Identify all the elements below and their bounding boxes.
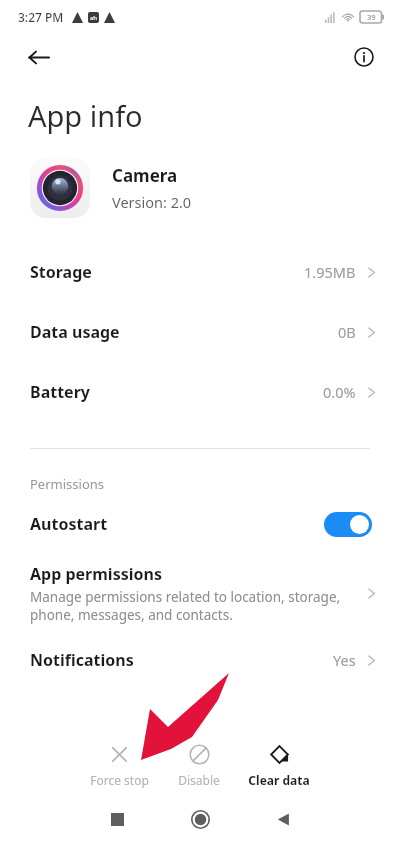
staticText: Storage: [30, 261, 92, 283]
button[interactable]: Clear data: [244, 742, 314, 790]
staticText: Permissions: [30, 475, 105, 493]
button[interactable]: Data usage: [0, 302, 400, 362]
staticText: Manage permissions related to location, …: [30, 588, 351, 624]
button[interactable]: Storage: [0, 242, 400, 302]
staticText: Version: 2.0: [112, 192, 192, 212]
staticText: ah: [90, 14, 98, 22]
staticText: 3:27 PM: [18, 9, 64, 25]
staticText: Camera: [112, 164, 178, 187]
button[interactable]: Home: [172, 794, 228, 844]
staticText: 39: [367, 12, 376, 22]
button[interactable]: App details: [342, 35, 386, 79]
staticText: Clear data: [248, 772, 310, 788]
button[interactable]: App permissions: [0, 555, 400, 632]
button[interactable]: Battery: [0, 362, 400, 422]
staticText: 0.0%: [323, 382, 356, 402]
staticText: Yes: [333, 650, 356, 670]
button[interactable]: Notifications: [0, 632, 400, 688]
button[interactable]: Recent apps: [89, 794, 145, 844]
staticText: Disable: [178, 772, 220, 788]
staticText: Battery: [30, 381, 90, 403]
button[interactable]: Disable: [174, 742, 224, 790]
button[interactable]: Back: [255, 794, 311, 844]
staticText: App info: [28, 96, 143, 135]
button[interactable]: Force stop: [86, 742, 153, 790]
staticText: 1.95MB: [304, 262, 356, 282]
button[interactable]: Back: [16, 35, 60, 79]
staticText: Force stop: [90, 772, 149, 788]
staticText: Data usage: [30, 321, 120, 343]
button[interactable]: Autostart: [0, 493, 400, 555]
staticText: Autostart: [30, 513, 108, 535]
staticText: 0B: [338, 322, 356, 342]
staticText: App permissions: [30, 563, 162, 585]
staticText: Notifications: [30, 649, 134, 671]
